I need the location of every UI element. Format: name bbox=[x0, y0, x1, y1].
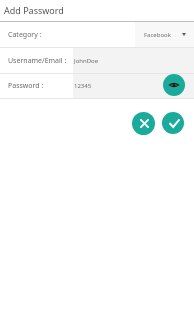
staticText: Add Password bbox=[4, 4, 64, 16]
staticText: 12345 bbox=[74, 82, 92, 90]
staticText: Password : bbox=[8, 81, 44, 91]
button[interactable]: Save bbox=[162, 112, 184, 134]
button[interactable]: Show password bbox=[163, 74, 185, 96]
button[interactable]: Category spinner bbox=[135, 22, 194, 47]
button[interactable]: 12345 bbox=[73, 74, 194, 98]
staticText: JohnDoe bbox=[74, 57, 99, 65]
staticText: Username/Email : bbox=[8, 56, 67, 66]
staticText: Facebook bbox=[144, 31, 171, 39]
button[interactable]: Category : bbox=[0, 22, 194, 47]
button[interactable]: Cancel bbox=[132, 112, 155, 135]
staticText: Category : bbox=[8, 30, 42, 40]
button[interactable]: JohnDoe bbox=[73, 48, 194, 73]
